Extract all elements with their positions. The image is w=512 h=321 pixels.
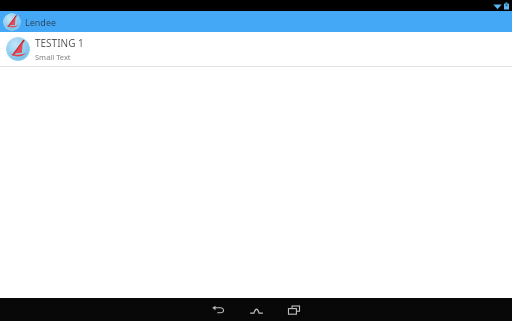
staticText: Lendee [25, 16, 57, 28]
button[interactable]: Back [205, 298, 231, 321]
button[interactable]: TESTING 1 [0, 32, 512, 67]
staticText: TESTING 1 [35, 36, 84, 50]
staticText: Small Text [35, 52, 71, 62]
button[interactable]: Home [243, 298, 269, 321]
button[interactable]: Recent apps [281, 298, 307, 321]
